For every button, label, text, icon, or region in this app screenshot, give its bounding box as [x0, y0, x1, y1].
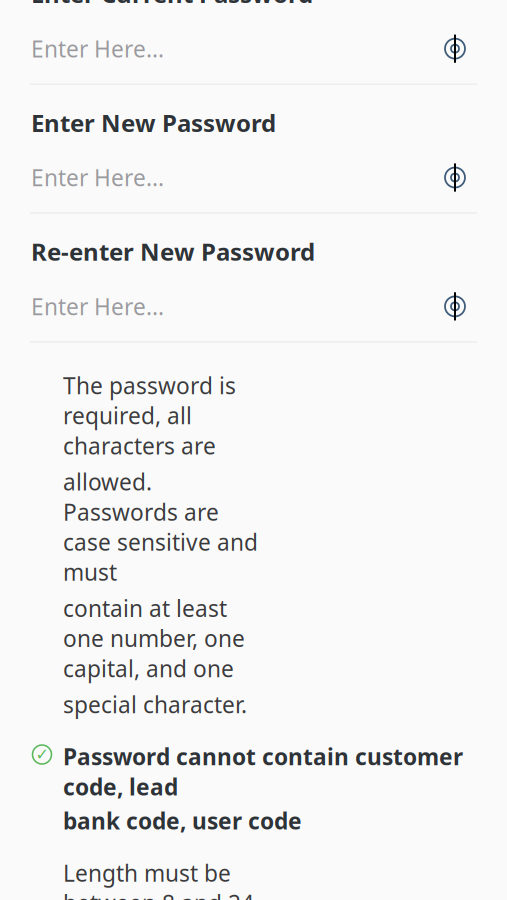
button[interactable]: Show password [434, 160, 476, 194]
staticText: special character. [63, 689, 247, 719]
staticText: Enter Current Password [31, 0, 313, 10]
staticText: ✓ [35, 745, 48, 764]
staticText: Enter Here... [31, 34, 164, 64]
staticText: Enter Here... [31, 291, 164, 321]
staticText: Password cannot contain customer code, l… [63, 741, 463, 802]
button[interactable]: Show password [434, 32, 476, 66]
staticText: Length must be between 8 and 24 [63, 858, 254, 900]
button[interactable]: Show password [434, 289, 476, 323]
staticText: The password is required, all characters… [63, 370, 236, 461]
staticText: Enter Here... [31, 162, 164, 193]
staticText: Enter New Password [31, 107, 276, 138]
staticText: Re-enter New Password [31, 235, 315, 267]
staticText: bank code, user code [63, 806, 302, 836]
staticText: allowed. Passwords are case sensitive an… [63, 467, 258, 587]
staticText: contain at least one number, one capital… [63, 593, 245, 683]
